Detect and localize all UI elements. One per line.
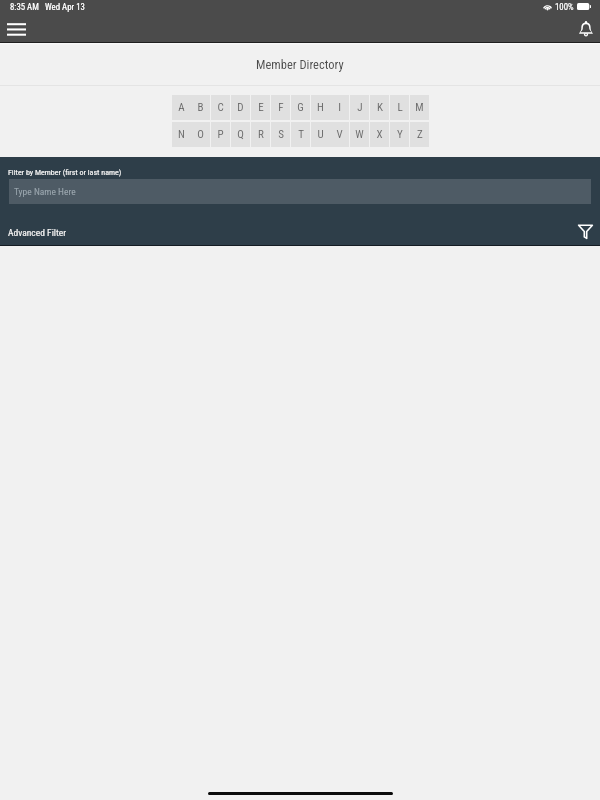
staticText: Y [397,128,403,141]
button[interactable]: D [231,95,250,120]
button[interactable]: U [311,122,330,147]
button[interactable]: W [350,122,369,147]
staticText: G [297,101,304,114]
staticText: W [355,128,364,141]
button[interactable]: Menu [0,15,34,41]
staticText: F [278,101,284,114]
button[interactable]: J [350,95,369,120]
staticText: B [197,101,204,114]
button[interactable]: G [291,95,310,120]
staticText: 8:35 AM [10,2,39,12]
button[interactable]: P [211,122,230,147]
staticText: Z [417,128,423,141]
staticText: C [217,101,224,114]
staticText: 100% [555,2,574,12]
staticText: U [317,128,324,141]
button[interactable]: Y [390,122,409,147]
button[interactable]: Open advanced filter [575,221,595,241]
button[interactable]: B [191,95,210,120]
staticText: H [317,101,324,114]
button[interactable]: H [311,95,330,120]
staticText: Wed Apr 13 [45,2,85,12]
staticText: Filter by Member (first or last name) [8,168,122,177]
button[interactable]: L [390,95,409,120]
button[interactable]: I [330,95,349,120]
staticText: L [397,101,403,114]
staticText: I [338,101,341,114]
button[interactable]: F [271,95,290,120]
staticText: R [258,128,264,141]
staticText: S [278,128,284,141]
staticText: Type Name Here [14,186,76,197]
staticText: Member Directory [256,57,344,72]
button[interactable]: V [330,122,349,147]
button[interactable]: T [291,122,310,147]
staticText: Advanced Filter [8,227,67,238]
button[interactable]: X [370,122,389,147]
staticText: J [357,101,363,114]
button[interactable]: A [172,95,191,120]
staticText: E [258,101,264,114]
staticText: A [178,101,185,114]
staticText: D [237,101,244,114]
staticText: N [178,128,185,141]
button[interactable]: R [251,122,270,147]
button[interactable]: O [191,122,210,147]
staticText: T [298,128,304,141]
button[interactable]: N [172,122,191,147]
button[interactable]: M [410,95,429,120]
button[interactable]: C [211,95,230,120]
button[interactable]: Type Name Here [9,179,591,204]
staticText: M [415,101,424,114]
button[interactable]: Notifications [572,14,600,42]
staticText: P [217,128,224,141]
staticText: Q [237,128,244,141]
staticText: X [376,128,383,141]
button[interactable]: E [251,95,270,120]
staticText: K [377,101,383,114]
staticText: O [197,128,204,141]
button[interactable]: S [271,122,290,147]
button[interactable]: Q [231,122,250,147]
staticText: V [336,128,343,141]
button[interactable]: Advanced Filter [0,215,600,245]
button[interactable]: Z [410,122,429,147]
button[interactable]: K [370,95,389,120]
